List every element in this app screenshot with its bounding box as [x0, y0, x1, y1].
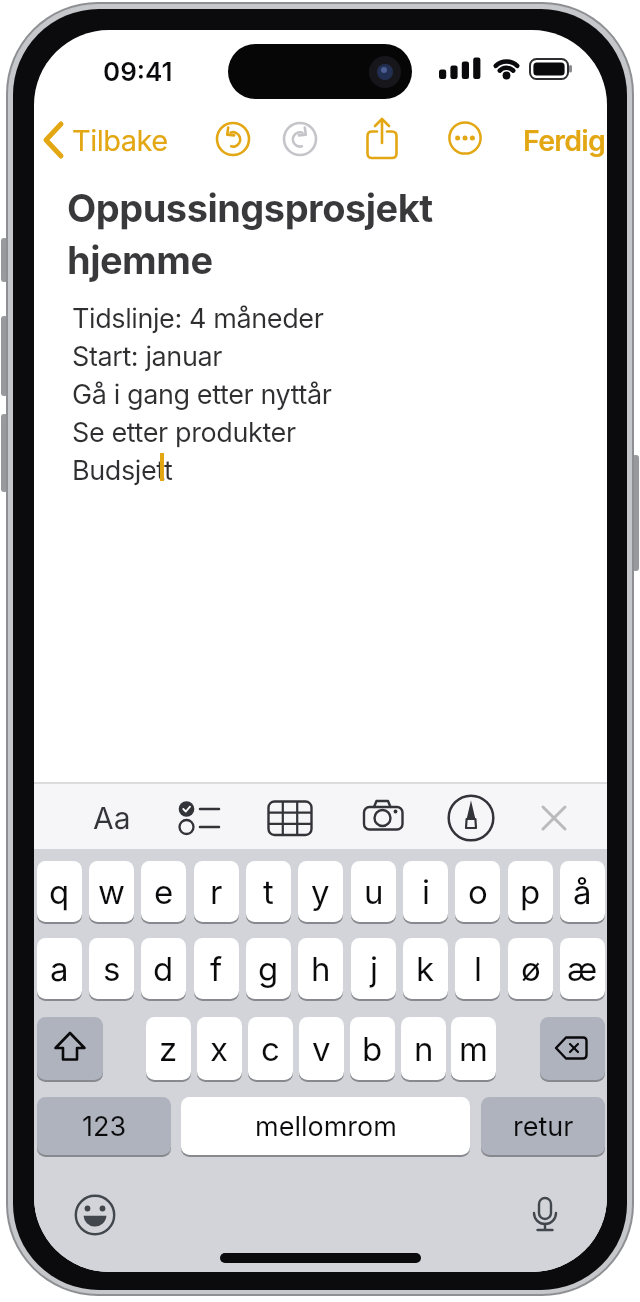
button[interactable]: i	[403, 861, 448, 922]
button[interactable]	[215, 121, 251, 157]
staticText: n	[414, 1029, 434, 1069]
button[interactable]: z	[146, 1017, 191, 1080]
button[interactable]: r	[194, 861, 239, 922]
button[interactable]	[37, 1017, 103, 1080]
button[interactable]: g	[246, 938, 291, 999]
staticText: y	[311, 872, 330, 912]
button[interactable]: å	[560, 861, 605, 922]
staticText: p	[520, 872, 541, 912]
staticText: Ferdig	[523, 123, 606, 157]
button[interactable]: q	[37, 861, 82, 922]
staticText: x	[210, 1029, 229, 1069]
staticText: g	[258, 949, 279, 989]
staticText: mellomrom	[255, 1110, 397, 1143]
staticText: retur	[513, 1110, 574, 1143]
button[interactable]	[267, 798, 313, 838]
button[interactable]: w	[89, 861, 134, 922]
button[interactable]: a	[37, 938, 82, 999]
staticText: ø	[521, 949, 541, 989]
staticText: f	[210, 949, 223, 989]
staticText: w	[98, 872, 126, 912]
staticText: i	[422, 872, 430, 912]
button[interactable]: n	[401, 1017, 446, 1080]
button[interactable]: mellomrom	[181, 1097, 470, 1155]
button[interactable]: b	[350, 1017, 395, 1080]
staticText: e	[154, 872, 174, 912]
staticText: u	[364, 872, 384, 912]
button[interactable]: j	[351, 938, 396, 999]
button[interactable]: y	[298, 861, 343, 922]
staticText: h	[311, 949, 331, 989]
button[interactable]: m	[451, 1017, 496, 1080]
button[interactable]: s	[89, 938, 134, 999]
button[interactable]: f	[194, 938, 239, 999]
staticText: Oppussingsprosjekt hjemme	[67, 185, 433, 283]
button[interactable]: retur	[481, 1097, 605, 1155]
staticText: b	[362, 1029, 383, 1069]
staticText: 09:41	[103, 56, 173, 87]
button[interactable]: 123	[37, 1097, 171, 1155]
staticText: d	[153, 949, 174, 989]
button[interactable]	[532, 798, 576, 838]
button[interactable]: v	[299, 1017, 344, 1080]
button[interactable]: Aa	[82, 796, 142, 840]
staticText: Aa	[93, 800, 131, 836]
button[interactable]: h	[298, 938, 343, 999]
staticText: a	[50, 949, 69, 989]
button[interactable]	[282, 121, 318, 157]
button[interactable]: c	[248, 1017, 293, 1080]
button[interactable]: e	[141, 861, 186, 922]
staticText: å	[573, 872, 592, 912]
button[interactable]: k	[403, 938, 448, 999]
button[interactable]	[178, 798, 222, 838]
staticText: k	[416, 949, 435, 989]
staticText: v	[312, 1029, 331, 1069]
staticText: s	[103, 949, 121, 989]
button[interactable]	[540, 1017, 605, 1080]
button[interactable]: u	[351, 861, 396, 922]
button[interactable]: x	[197, 1017, 242, 1080]
staticText: t	[263, 872, 274, 912]
button[interactable]: ø	[508, 938, 553, 999]
staticText: Tidslinje: 4 måneder Start: januar Gå i …	[72, 302, 332, 487]
button[interactable]: d	[141, 938, 186, 999]
staticText: l	[474, 949, 482, 989]
staticText: 123	[82, 1110, 127, 1143]
staticText: q	[49, 872, 70, 912]
staticText: m	[459, 1029, 488, 1069]
staticText: j	[370, 949, 378, 989]
button[interactable]: t	[246, 861, 291, 922]
button[interactable]: l	[455, 938, 500, 999]
button[interactable]	[447, 794, 495, 842]
button[interactable]	[360, 799, 408, 837]
staticText: c	[261, 1029, 280, 1069]
button[interactable]	[74, 1194, 116, 1236]
button[interactable]	[447, 120, 483, 156]
staticText: æ	[567, 949, 598, 989]
staticText: Tilbake	[72, 123, 168, 158]
button[interactable]	[527, 1195, 563, 1237]
staticText: z	[159, 1029, 178, 1069]
staticText: o	[468, 872, 488, 912]
button[interactable]: Tilbake	[38, 118, 203, 162]
button[interactable]	[364, 116, 400, 160]
button[interactable]: æ	[560, 938, 605, 999]
button[interactable]: Ferdig	[486, 118, 606, 162]
button[interactable]: o	[455, 861, 500, 922]
staticText: r	[210, 872, 223, 912]
button[interactable]: p	[508, 861, 553, 922]
